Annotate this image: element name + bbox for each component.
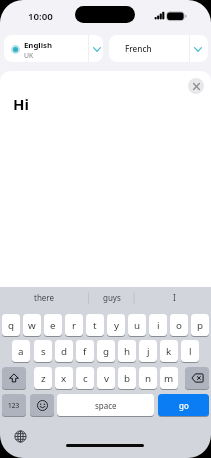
button[interactable]: r [65, 314, 83, 336]
staticText: English [24, 40, 52, 51]
button[interactable] [188, 78, 204, 94]
staticText: j [147, 345, 150, 358]
staticText: n [145, 372, 152, 385]
button[interactable]: I [137, 287, 211, 308]
button[interactable]: w [23, 314, 41, 336]
button[interactable] [185, 367, 209, 389]
button[interactable]: a [12, 340, 30, 362]
button[interactable]: c [76, 367, 94, 389]
button[interactable]: 123 [2, 394, 26, 416]
staticText: p [197, 319, 204, 332]
button[interactable]: n [139, 367, 157, 389]
button[interactable]: d [55, 340, 73, 362]
button[interactable]: v [97, 367, 115, 389]
staticText: m [164, 372, 174, 385]
button[interactable]: p [191, 314, 209, 336]
button[interactable]: q [2, 314, 20, 336]
button[interactable]: l [181, 340, 199, 362]
staticText: v [104, 372, 109, 385]
staticText: UK [24, 51, 34, 60]
staticText: x [61, 372, 67, 385]
staticText: there [34, 292, 54, 303]
staticText: o [176, 319, 182, 332]
staticText: t [93, 319, 97, 332]
button[interactable]: b [118, 367, 136, 389]
staticText: w [28, 319, 36, 332]
staticText: y [114, 319, 119, 332]
staticText: go [179, 400, 189, 411]
button[interactable] [30, 394, 54, 416]
button[interactable]: u [128, 314, 146, 336]
staticText: Hi [13, 94, 29, 114]
button[interactable]: z [34, 367, 52, 389]
staticText: g [103, 345, 110, 358]
button[interactable]: y [107, 314, 125, 336]
button[interactable]: o [170, 314, 188, 336]
staticText: 10:00 [28, 10, 53, 23]
staticText: s [41, 345, 46, 358]
staticText: k [166, 345, 172, 358]
button[interactable]: s [34, 340, 52, 362]
staticText: r [72, 319, 77, 332]
staticText: d [61, 345, 68, 358]
button[interactable]: x [55, 367, 73, 389]
button[interactable]: English [4, 35, 103, 62]
staticText: e [50, 319, 56, 332]
button[interactable]: e [44, 314, 62, 336]
button[interactable] [2, 367, 26, 389]
button[interactable]: go [158, 394, 209, 416]
button[interactable]: j [139, 340, 157, 362]
staticText: z [41, 372, 46, 385]
staticText: f [83, 345, 87, 358]
staticText: space [95, 400, 117, 411]
staticText: guys [103, 292, 121, 303]
button[interactable]: m [160, 367, 178, 389]
staticText: a [18, 345, 24, 358]
button[interactable]: space [57, 394, 154, 416]
button[interactable]: h [118, 340, 136, 362]
staticText: q [8, 319, 15, 332]
button[interactable]: there [0, 287, 88, 308]
button[interactable]: t [86, 314, 104, 336]
button[interactable]: f [76, 340, 94, 362]
staticText: h [124, 345, 131, 358]
staticText: I [173, 292, 176, 303]
button[interactable]: French [109, 35, 208, 62]
staticText: 123 [8, 401, 20, 410]
button[interactable]: i [149, 314, 167, 336]
staticText: French [125, 43, 152, 54]
staticText: u [134, 319, 141, 332]
staticText: i [157, 319, 160, 332]
staticText: b [124, 372, 131, 385]
button[interactable]: k [160, 340, 178, 362]
button[interactable]: guys [89, 287, 134, 308]
button[interactable]: g [97, 340, 115, 362]
staticText: l [189, 345, 192, 358]
staticText: c [83, 372, 88, 385]
